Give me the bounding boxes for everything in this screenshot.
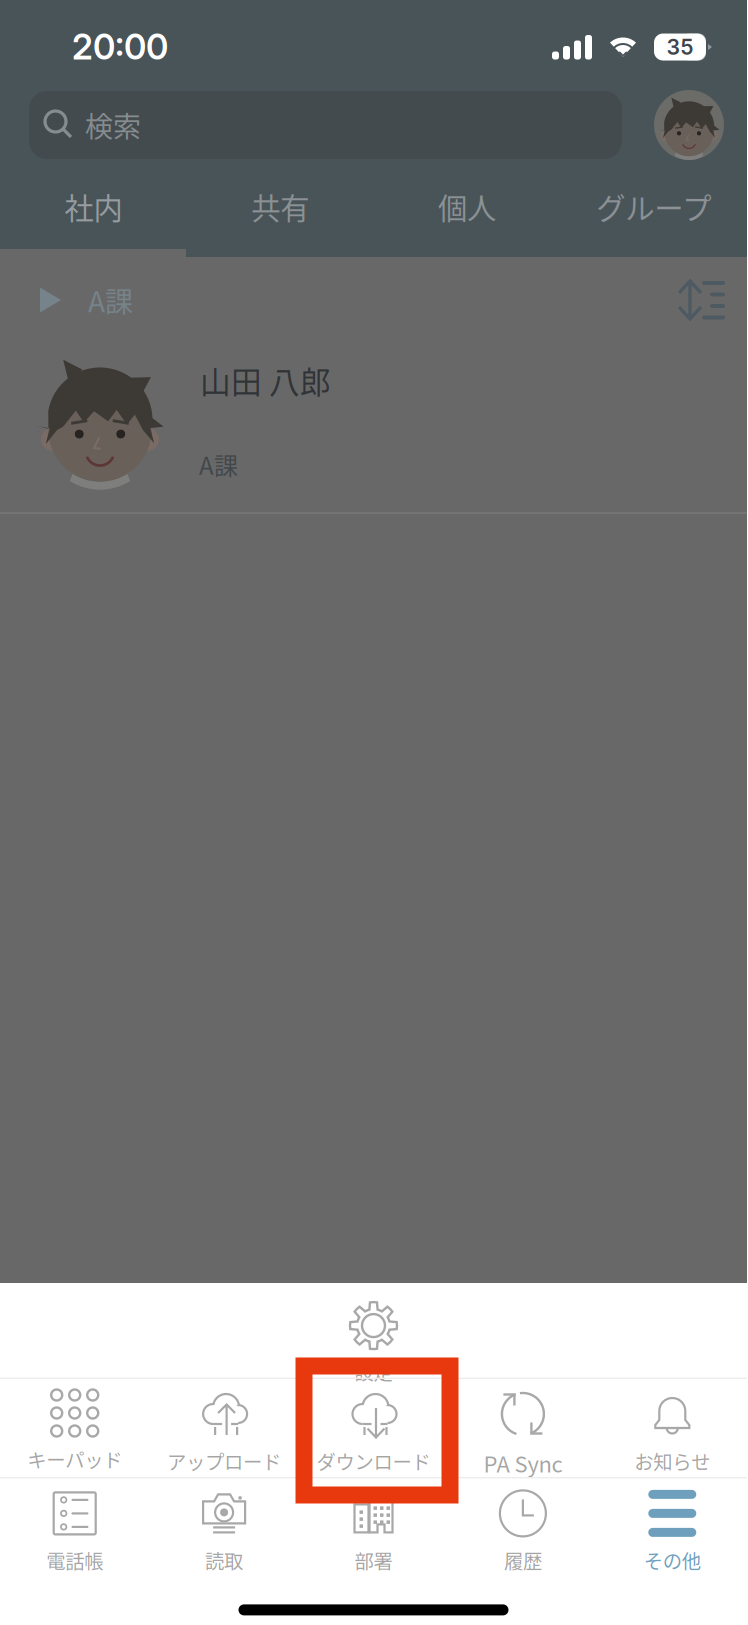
staticText: お知らせ xyxy=(634,1447,710,1475)
button[interactable]: 設定 xyxy=(0,1283,747,1378)
staticText: 山田 八郎 xyxy=(200,358,331,402)
button[interactable]: その他 xyxy=(598,1478,747,1576)
button[interactable]: アップロード xyxy=(149,1379,299,1477)
staticText: 電話帳 xyxy=(46,1546,103,1574)
staticText: キーパッド xyxy=(27,1445,122,1473)
staticText: 検索 xyxy=(85,105,141,145)
staticText: 部署 xyxy=(354,1546,392,1574)
staticText: 読取 xyxy=(205,1546,243,1574)
button[interactable]: 部署 xyxy=(299,1478,448,1576)
button[interactable]: 電話帳 xyxy=(0,1478,149,1576)
staticText: 履歴 xyxy=(504,1546,542,1574)
staticText: 社内 xyxy=(64,185,122,228)
staticText: 共有 xyxy=(251,185,309,228)
staticText: 設定 xyxy=(354,1358,392,1386)
button[interactable]: PA Sync xyxy=(448,1379,598,1477)
button[interactable]: 個人 xyxy=(373,159,560,254)
staticText: A課 xyxy=(199,447,238,482)
staticText: 個人 xyxy=(438,185,496,228)
staticText: アップロード xyxy=(167,1447,281,1475)
staticText: ダウンロード xyxy=(316,1447,430,1475)
button[interactable]: グループ xyxy=(560,159,747,254)
button[interactable]: キーパッド xyxy=(0,1379,149,1477)
staticText: その他 xyxy=(644,1546,701,1574)
button[interactable]: 共有 xyxy=(187,159,374,254)
staticText: グループ xyxy=(596,185,711,228)
staticText: 20:00 xyxy=(72,26,168,68)
button[interactable]: ダウンロード xyxy=(299,1379,448,1477)
button[interactable]: お知らせ xyxy=(598,1379,747,1477)
button[interactable]: 履歴 xyxy=(448,1478,598,1576)
button[interactable]: 社内 xyxy=(0,159,187,254)
button[interactable]: 読取 xyxy=(149,1478,299,1576)
staticText: PA Sync xyxy=(483,1447,562,1479)
staticText: A課 xyxy=(88,280,133,320)
staticText: 35 xyxy=(666,34,693,60)
